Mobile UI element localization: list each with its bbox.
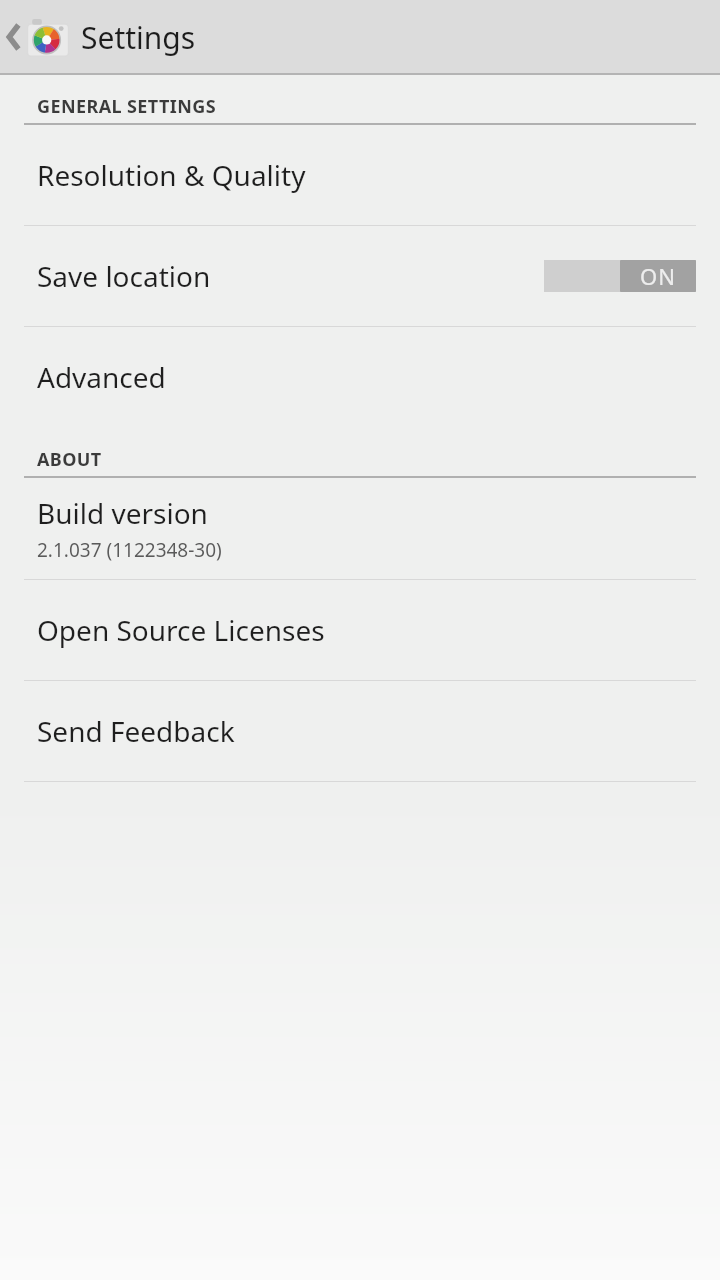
staticText: 2.1.037 (1122348-30) [37, 537, 222, 563]
staticText: ON [640, 261, 676, 291]
staticText: Send Feedback [37, 712, 235, 750]
staticText: Save location [37, 257, 211, 295]
staticText: Resolution & Quality [37, 156, 306, 194]
button[interactable]: Resolution & Quality [0, 125, 720, 225]
button[interactable]: Navigate up, Settings [0, 0, 720, 74]
staticText: Settings [81, 17, 196, 58]
staticText: Advanced [37, 358, 166, 396]
button[interactable]: Open Source Licenses [0, 580, 720, 680]
staticText: Open Source Licenses [37, 611, 325, 649]
staticText: GENERAL SETTINGS [37, 94, 216, 119]
button[interactable]: Save location on [544, 260, 696, 292]
button[interactable]: Advanced [0, 327, 720, 427]
button[interactable]: Save location [0, 226, 720, 326]
button[interactable]: Build version [0, 478, 720, 579]
staticText: Build version [37, 494, 208, 532]
staticText: ABOUT [37, 447, 102, 472]
button[interactable]: Send Feedback [0, 681, 720, 781]
